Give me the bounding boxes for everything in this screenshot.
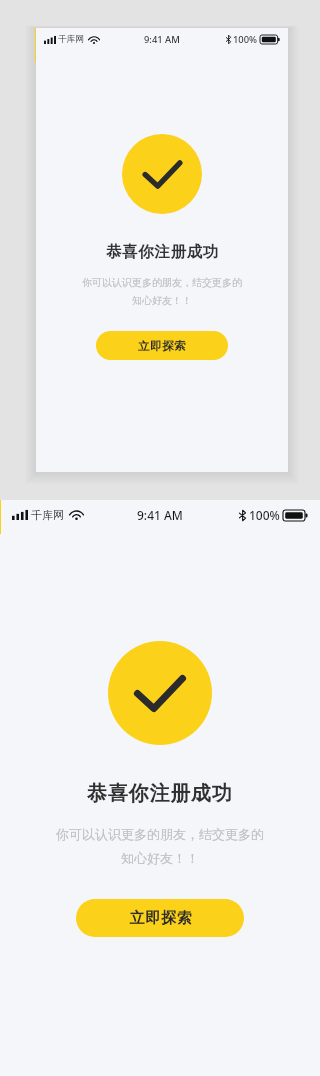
staticText: 100% bbox=[249, 507, 280, 523]
staticText: 千库网 bbox=[58, 34, 84, 45]
button[interactable]: 立即探索 bbox=[76, 899, 244, 937]
staticText: 9:41 AM bbox=[137, 507, 183, 523]
staticText: 你可以认识更多的朋友，结交更多的 知心好友！！ bbox=[82, 276, 242, 307]
staticText: 立即探索 bbox=[138, 339, 187, 353]
staticText: 恭喜你注册成功 bbox=[106, 242, 219, 262]
button[interactable]: 立即探索 bbox=[96, 331, 228, 360]
staticText: 9:41 AM bbox=[144, 33, 180, 46]
staticText: 恭喜你注册成功 bbox=[87, 781, 233, 806]
staticText: 千库网 bbox=[31, 508, 64, 522]
staticText: 立即探索 bbox=[129, 909, 192, 928]
staticText: 100% bbox=[233, 33, 258, 46]
staticText: 你可以认识更多的朋友，结交更多的 知心好友！！ bbox=[56, 826, 264, 867]
